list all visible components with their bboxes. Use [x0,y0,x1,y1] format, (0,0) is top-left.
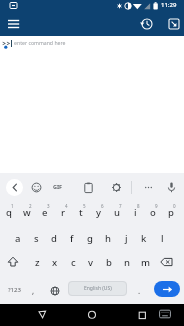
staticText: h [105,232,111,245]
button[interactable] [34,307,50,323]
button[interactable]: , [24,278,42,304]
button[interactable]: v [82,252,100,278]
button[interactable] [29,180,44,195]
staticText: w [23,206,31,219]
staticText: 5 [83,203,86,209]
button[interactable]: l [153,226,171,252]
staticText: u [114,206,120,219]
staticText: 3 [47,203,50,209]
button[interactable]: n [118,252,136,278]
button[interactable]: o [144,200,162,226]
button[interactable]: z [28,252,46,278]
button[interactable] [6,179,23,196]
button[interactable] [166,16,182,32]
button[interactable] [154,252,182,278]
button[interactable]: g [81,226,99,252]
button[interactable]: k [135,226,153,252]
button[interactable] [154,281,180,297]
button[interactable]: w [18,200,36,226]
staticText: s [34,232,39,245]
button[interactable]: r [54,200,72,226]
button[interactable]: q [0,200,18,226]
staticText: 0 [173,203,176,209]
button[interactable]: m [136,252,154,278]
button[interactable]: h [99,226,117,252]
staticText: e [42,206,48,219]
staticText: 11:29 [161,1,177,9]
staticText: a [15,232,21,245]
staticText: , [32,285,35,296]
staticText: t [79,206,83,219]
staticText: . [138,285,141,296]
staticText: 4 [65,203,68,209]
staticText: enter command here [14,39,66,46]
button[interactable] [157,307,173,323]
staticText: i [134,206,137,219]
staticText: 8 [137,203,140,209]
staticText: 1 [11,203,14,209]
staticText: o [150,206,156,219]
staticText: q [6,206,12,219]
staticText: f [70,232,74,245]
staticText: n [124,256,130,269]
button[interactable] [84,307,100,323]
button[interactable] [46,278,64,304]
staticText: l [161,232,164,245]
button[interactable]: j [117,226,135,252]
button[interactable] [0,252,28,278]
button[interactable]: f [63,226,81,252]
button[interactable]: ?123 [0,278,28,304]
button[interactable]: y [90,200,108,226]
staticText: j [125,232,128,245]
staticText: English (US) [84,285,112,292]
button[interactable]: x [46,252,64,278]
button[interactable]: p [162,200,180,226]
staticText: ?123 [8,286,21,294]
button[interactable]: s [27,226,45,252]
button[interactable]: b [100,252,118,278]
staticText: c [71,256,76,269]
button[interactable]: u [108,200,126,226]
button[interactable]: d [45,226,63,252]
button[interactable] [4,18,24,32]
button[interactable] [164,180,179,195]
button[interactable]: e [36,200,54,226]
staticText: b [106,256,112,269]
button[interactable] [134,307,150,323]
staticText: g [87,232,93,245]
staticText: m [141,256,150,269]
staticText: >> [2,39,11,49]
button[interactable] [81,180,96,195]
button[interactable] [109,180,124,195]
button[interactable] [139,16,155,32]
staticText: 7 [119,203,122,209]
staticText: GIF [53,183,63,190]
button[interactable]: . [130,278,148,304]
staticText: d [51,232,57,245]
staticText: 9 [155,203,158,209]
button[interactable]: a [9,226,27,252]
button[interactable] [141,180,156,195]
staticText: r [61,206,66,219]
button[interactable]: English (US) [68,281,127,296]
staticText: x [52,256,58,269]
staticText: z [35,256,40,269]
staticText: k [141,232,147,245]
staticText: 6 [101,203,104,209]
button[interactable]: t [72,200,90,226]
staticText: 2 [29,203,32,209]
staticText: p [168,206,174,219]
staticText: y [96,206,102,219]
staticText: v [88,256,94,269]
button[interactable]: i [126,200,144,226]
button[interactable]: c [64,252,82,278]
